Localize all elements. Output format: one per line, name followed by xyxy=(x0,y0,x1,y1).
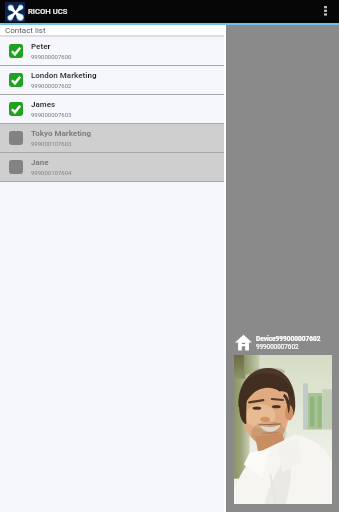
staticText: Device999000007602 xyxy=(256,335,321,343)
staticText: Tokyo Marketing xyxy=(31,129,92,138)
staticText: 999000007602 xyxy=(256,343,299,350)
button[interactable]: More options xyxy=(312,0,339,23)
staticText: 999000007603 xyxy=(31,111,72,118)
button[interactable]: Jane xyxy=(0,153,224,181)
staticText: London Marketing xyxy=(31,71,97,80)
staticText: 999000107603 xyxy=(31,140,72,147)
button[interactable]: James xyxy=(0,95,224,123)
staticText: Jane xyxy=(31,158,49,167)
staticText: 999000007600 xyxy=(31,53,72,60)
staticText: Peter xyxy=(31,42,51,51)
staticText: 999000007602 xyxy=(31,82,72,89)
staticText: James xyxy=(31,100,56,109)
staticText: Contact list xyxy=(5,26,46,35)
button[interactable]: Tokyo Marketing xyxy=(0,124,224,152)
button[interactable]: Peter xyxy=(0,37,224,65)
staticText: RICOH UCS xyxy=(28,7,68,16)
button[interactable]: London Marketing xyxy=(0,66,224,94)
staticText: 999000107604 xyxy=(31,169,72,176)
